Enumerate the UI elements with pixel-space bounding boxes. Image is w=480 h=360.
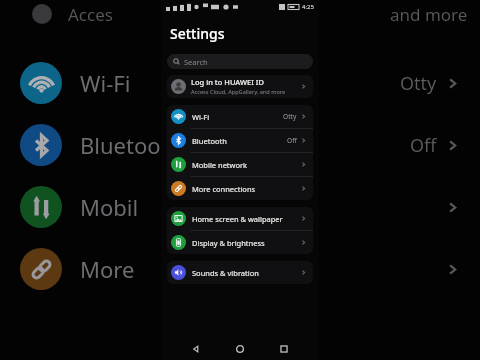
staticText: Off: [410, 133, 437, 158]
staticText: Home screen & wallpaper: [192, 214, 283, 224]
button[interactable]: More connections: [167, 177, 313, 200]
staticText: Otty: [400, 71, 437, 96]
staticText: Wi-Fi: [192, 112, 210, 122]
staticText: Sounds & vibration: [192, 268, 259, 278]
staticText: Display & brightness: [192, 238, 265, 248]
button[interactable]: Recent apps: [275, 340, 293, 358]
button[interactable]: Home: [231, 340, 249, 358]
staticText: and more: [390, 3, 468, 26]
button[interactable]: Back: [187, 340, 205, 358]
staticText: More: [80, 254, 135, 284]
staticText: Otty: [283, 112, 297, 121]
staticText: Mobil: [80, 192, 139, 222]
staticText: Acces: [68, 3, 113, 26]
staticText: Log in to HUAWEI ID: [191, 77, 264, 87]
button[interactable]: Home screen & wallpaper: [167, 207, 313, 230]
staticText: Bluetooth: [192, 136, 227, 146]
staticText: Settings: [170, 24, 225, 43]
button[interactable]: Wi-Fi: [167, 105, 313, 128]
staticText: More connections: [192, 184, 256, 194]
button[interactable]: Display & brightness: [167, 231, 313, 254]
staticText: Wi-Fi: [80, 68, 131, 98]
staticText: Off: [287, 136, 297, 145]
button[interactable]: Sounds & vibration: [167, 261, 313, 284]
button[interactable]: Log in to HUAWEI ID: [167, 75, 313, 98]
staticText: Search: [184, 57, 208, 67]
button[interactable]: Bluetooth: [167, 129, 313, 152]
staticText: Bluetoo: [80, 130, 161, 160]
button[interactable]: Search: [167, 54, 313, 69]
button[interactable]: Mobile network: [167, 153, 313, 176]
staticText: Access Cloud, AppGallery, and more: [191, 88, 286, 96]
staticText: Mobile network: [192, 160, 248, 170]
staticText: 4:25: [302, 3, 314, 11]
